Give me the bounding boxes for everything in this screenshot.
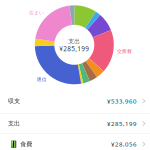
staticText: 住まい: [29, 10, 44, 16]
staticText: 通信: [37, 76, 47, 82]
staticText: 交際費: [117, 48, 132, 54]
button[interactable]: 食費: [0, 134, 150, 150]
staticText: 食費: [20, 140, 32, 148]
staticText: ¥28,056: [111, 140, 137, 148]
staticText: ¥285,199: [59, 44, 89, 53]
staticText: 収支: [8, 97, 20, 105]
button[interactable]: 支出: [0, 114, 150, 133]
staticText: 支出: [68, 38, 80, 45]
staticText: 支出: [8, 120, 20, 127]
staticText: ¥285,199: [107, 119, 137, 128]
staticText: ¥533,960: [107, 97, 137, 105]
button[interactable]: 収支: [0, 89, 150, 113]
